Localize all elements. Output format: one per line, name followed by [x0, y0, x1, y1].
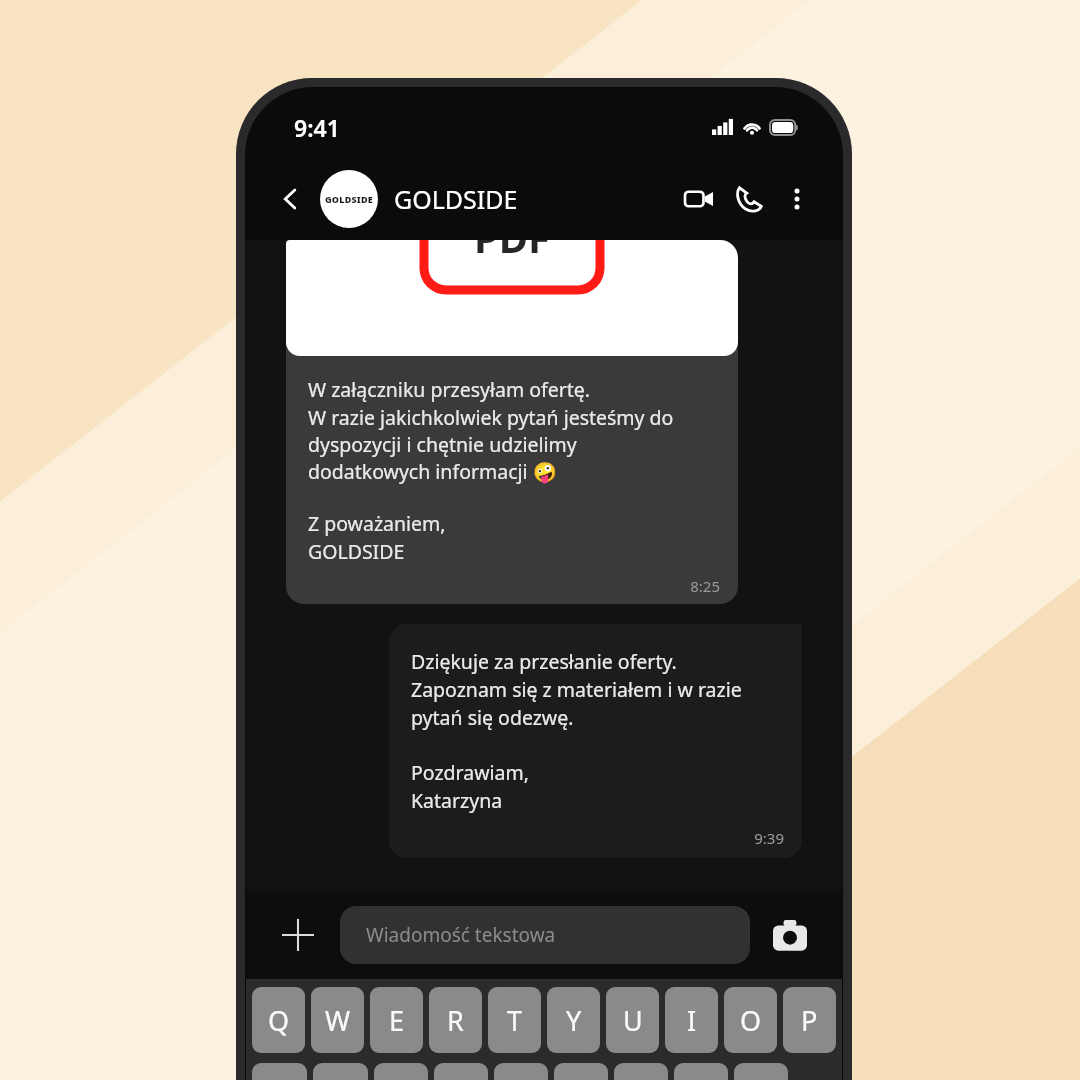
button[interactable]: D: [374, 1063, 428, 1080]
staticText: I: [687, 1002, 697, 1039]
button[interactable]: P: [783, 987, 836, 1053]
button[interactable]: PDF: [286, 240, 738, 604]
button[interactable]: W: [311, 987, 364, 1053]
staticText: PDF: [474, 240, 551, 264]
button[interactable]: J: [614, 1063, 668, 1080]
button[interactable]: Y: [547, 987, 600, 1053]
button[interactable]: GOLDSIDE: [320, 170, 674, 228]
button[interactable]: Q: [252, 987, 305, 1053]
staticText: GOLDSIDE: [325, 193, 373, 205]
button[interactable]: Dziękuje za przesłanie oferty. Zapoznam …: [389, 624, 802, 858]
button[interactable]: K: [674, 1063, 728, 1080]
button[interactable]: Add attachment: [272, 909, 324, 961]
button[interactable]: I: [665, 987, 718, 1053]
staticText: Wiadomość tekstowa: [366, 922, 556, 948]
button[interactable]: T: [488, 987, 541, 1053]
button[interactable]: A: [252, 1063, 307, 1080]
staticText: GOLDSIDE: [394, 182, 518, 216]
button[interactable]: L: [734, 1063, 788, 1080]
staticText: Y: [566, 1002, 582, 1039]
button[interactable]: Back: [268, 176, 314, 222]
staticText: R: [447, 1002, 464, 1039]
staticText: T: [507, 1002, 523, 1039]
staticText: Q: [268, 1002, 290, 1039]
staticText: U: [623, 1002, 643, 1039]
staticText: Pozdrawiam, Katarzyna: [411, 759, 529, 814]
staticText: P: [801, 1002, 818, 1039]
button[interactable]: S: [313, 1063, 368, 1080]
button[interactable]: More options: [774, 176, 820, 222]
staticText: W załączniku przesyłam ofertę. W razie j…: [308, 376, 674, 484]
staticText: Dziękuje za przesłanie oferty. Zapoznam …: [411, 648, 742, 731]
button[interactable]: Call: [724, 174, 774, 224]
button[interactable]: Wiadomość tekstowa: [340, 906, 750, 964]
button[interactable]: E: [370, 987, 423, 1053]
staticText: O: [740, 1002, 762, 1039]
button[interactable]: R: [429, 987, 482, 1053]
staticText: 9:41: [294, 112, 340, 143]
button[interactable]: Camera: [764, 909, 816, 961]
staticText: Z poważaniem, GOLDSIDE: [308, 510, 446, 564]
button[interactable]: U: [606, 987, 659, 1053]
staticText: W: [325, 1002, 351, 1039]
button[interactable]: H: [554, 1063, 608, 1080]
staticText: 8:25: [308, 576, 720, 596]
staticText: 9:39: [411, 828, 784, 848]
staticText: E: [389, 1002, 405, 1039]
button[interactable]: G: [494, 1063, 548, 1080]
button[interactable]: O: [724, 987, 777, 1053]
button[interactable]: F: [434, 1063, 488, 1080]
button[interactable]: Video call: [674, 174, 724, 224]
